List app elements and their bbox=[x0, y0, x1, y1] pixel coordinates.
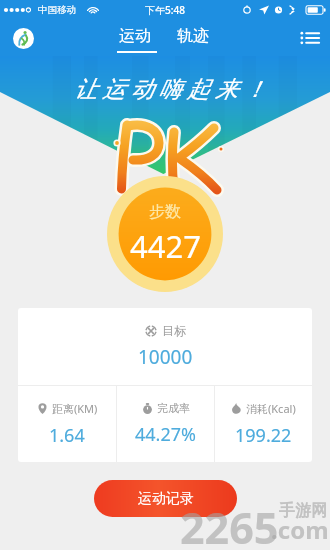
staticText: 让运动嗨起来！ bbox=[74, 75, 272, 104]
staticText: 4427 bbox=[130, 225, 201, 267]
staticText: 步数 bbox=[149, 202, 181, 222]
button[interactable]: 距离(KM) bbox=[18, 386, 116, 462]
staticText: .com bbox=[271, 513, 329, 546]
button[interactable]: 运动 bbox=[119, 26, 151, 46]
staticText: 1.64 bbox=[49, 423, 85, 448]
button[interactable]: 轨迹 bbox=[177, 26, 209, 46]
staticText: 消耗(Kcal) bbox=[246, 401, 296, 416]
staticText: 完成率 bbox=[157, 401, 190, 415]
button[interactable]: 目标 bbox=[18, 308, 312, 385]
staticText: 运动记录 bbox=[138, 490, 194, 508]
staticText: 中国移动 bbox=[38, 4, 76, 16]
button[interactable]: Profile bbox=[13, 28, 34, 49]
staticText: 10000 bbox=[138, 344, 193, 370]
button[interactable]: 消耗(Kcal) bbox=[215, 386, 312, 462]
staticText: 2265 bbox=[180, 498, 279, 550]
staticText: 距离(KM) bbox=[52, 401, 98, 416]
staticText: 目标 bbox=[162, 323, 186, 338]
button[interactable]: 完成率 bbox=[117, 386, 214, 462]
button[interactable]: Menu bbox=[298, 26, 322, 50]
staticText: 44.27% bbox=[135, 422, 196, 447]
staticText: 手游网 bbox=[279, 501, 327, 521]
staticText: 下午5:48 bbox=[145, 3, 185, 17]
button[interactable]: 运动记录 bbox=[94, 480, 237, 517]
staticText: 199.22 bbox=[235, 423, 292, 448]
button[interactable]: 步数 bbox=[107, 176, 223, 292]
